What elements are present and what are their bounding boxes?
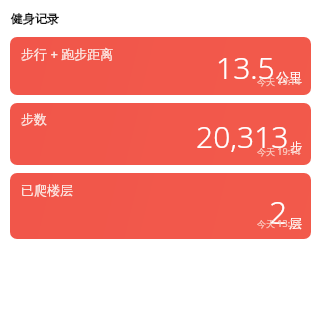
staticText: 步数 — [21, 111, 47, 127]
staticText: 步 — [290, 139, 302, 154]
staticText: 已爬楼层 — [21, 182, 73, 198]
staticText: 公里 — [276, 69, 302, 85]
staticText: 今天 13:24 — [257, 217, 301, 229]
staticText: 步行 + 跑步距离 — [21, 45, 114, 63]
button[interactable]: 已爬楼层 — [10, 173, 311, 239]
staticText: 2 — [269, 190, 288, 234]
button[interactable]: 步行 + 跑步距离 — [10, 37, 311, 95]
staticText: 今天 19:14 — [257, 145, 301, 157]
staticText: 层 — [289, 215, 302, 231]
staticText: 健身记录 — [11, 11, 59, 26]
staticText: 今天 19:14 — [257, 75, 301, 87]
staticText: 13.5 — [216, 47, 275, 88]
staticText: 20,313 — [196, 116, 289, 157]
button[interactable]: 步数 — [10, 103, 311, 165]
